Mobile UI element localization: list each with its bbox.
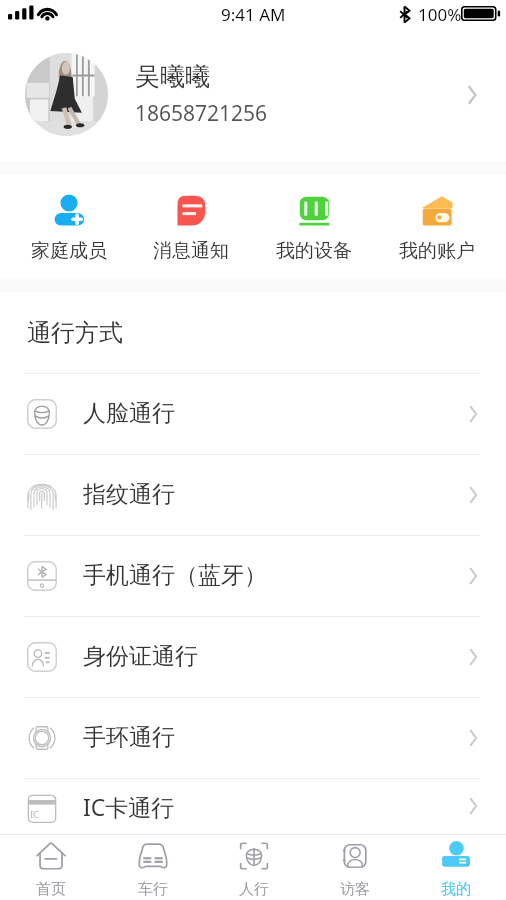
staticText: 身份证通行: [83, 642, 466, 671]
button[interactable]: 身份证通行: [0, 616, 506, 697]
staticText: 我的: [441, 880, 471, 899]
staticText: 手机通行（蓝牙）: [83, 561, 466, 590]
staticText: IC卡通行: [83, 791, 466, 822]
staticText: 手环通行: [83, 723, 466, 752]
staticText: 家庭成员: [31, 239, 107, 263]
staticText: 吴曦曦: [135, 61, 210, 92]
button[interactable]: 人脸通行: [0, 373, 506, 454]
button[interactable]: IC: [0, 778, 506, 834]
staticText: 消息通知: [153, 239, 229, 263]
button[interactable]: 家庭成员: [8, 175, 130, 278]
staticText: 9:41 AM: [221, 3, 286, 26]
button[interactable]: 手机通行（蓝牙）: [0, 535, 506, 616]
button[interactable]: 首页: [0, 835, 102, 900]
button[interactable]: 消息通知: [130, 175, 252, 278]
staticText: 100%: [418, 3, 462, 26]
staticText: 指纹通行: [83, 480, 466, 509]
button[interactable]: 人行: [203, 835, 304, 900]
staticText: 访客: [340, 880, 370, 899]
staticText: 车行: [138, 880, 168, 899]
button[interactable]: 车行: [102, 835, 203, 900]
button[interactable]: 我的设备: [252, 175, 375, 278]
staticText: 首页: [36, 880, 66, 899]
button[interactable]: 我的账户: [375, 175, 498, 278]
button[interactable]: 手环通行: [0, 697, 506, 778]
staticText: 人行: [239, 880, 269, 899]
staticText: 我的设备: [276, 239, 352, 263]
staticText: 18658721256: [135, 99, 268, 128]
button[interactable]: 访客: [304, 835, 405, 900]
staticText: IC: [30, 808, 39, 820]
button[interactable]: 吴曦曦: [0, 28, 506, 161]
button[interactable]: 我的: [405, 835, 506, 900]
staticText: 我的账户: [399, 239, 475, 263]
staticText: 通行方式: [27, 318, 123, 348]
staticText: 人脸通行: [83, 399, 466, 428]
button[interactable]: 指纹通行: [0, 454, 506, 535]
